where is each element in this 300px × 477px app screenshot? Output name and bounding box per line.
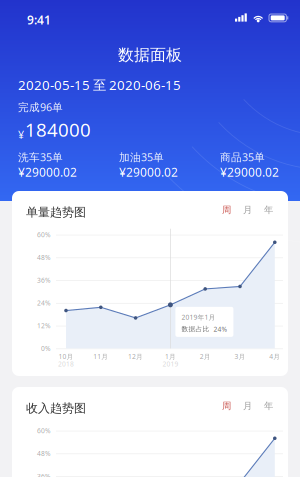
staticText: 2019年1月 xyxy=(181,313,215,322)
staticText: 36% xyxy=(37,472,51,477)
button[interactable]: 年 xyxy=(264,203,273,217)
staticText: 60% xyxy=(37,230,51,239)
staticText: 4月 xyxy=(269,352,280,361)
staticText: ¥29000.02 xyxy=(119,164,178,180)
staticText: 2018 xyxy=(58,359,74,368)
staticText: 3月 xyxy=(234,352,245,361)
staticText: 2020-05-15 至 2020-06-15 xyxy=(18,76,181,94)
staticText: 11月 xyxy=(93,352,108,361)
staticText: 1月 xyxy=(165,352,176,361)
staticText: 184000 xyxy=(25,117,91,142)
staticText: 24% xyxy=(213,325,227,334)
staticText: 9:41 xyxy=(27,12,51,28)
staticText: 加油35单 xyxy=(119,150,164,164)
staticText: 周 xyxy=(222,400,231,412)
staticText: 年 xyxy=(264,400,273,412)
staticText: 36% xyxy=(37,276,51,285)
button[interactable]: 年 xyxy=(264,399,273,413)
staticText: 10月 xyxy=(58,352,73,361)
staticText: ¥29000.02 xyxy=(220,164,279,180)
staticText: 2月 xyxy=(200,352,211,361)
staticText: 0% xyxy=(41,344,51,353)
staticText: 48% xyxy=(37,253,51,262)
staticText: 月 xyxy=(243,400,252,412)
staticText: 收入趋势图 xyxy=(26,401,86,416)
staticText: 数据面板 xyxy=(118,45,182,65)
staticText: ¥ xyxy=(18,128,24,142)
staticText: ¥29000.02 xyxy=(18,164,77,180)
staticText: 单量趋势图 xyxy=(26,205,86,220)
staticText: 月 xyxy=(243,204,252,216)
staticText: 12% xyxy=(37,321,51,330)
staticText: 24% xyxy=(37,298,51,307)
staticText: 洗车35单 xyxy=(18,150,63,164)
staticText: 60% xyxy=(37,426,51,435)
staticText: 年 xyxy=(264,204,273,216)
staticText: 数据占比 xyxy=(181,325,209,333)
staticText: 完成96单 xyxy=(18,100,63,114)
button[interactable]: 月 xyxy=(243,399,252,413)
staticText: 商品35单 xyxy=(220,150,265,164)
staticText: 12月 xyxy=(128,352,143,361)
button[interactable]: 周 xyxy=(222,203,231,217)
staticText: 周 xyxy=(222,204,231,216)
staticText: 48% xyxy=(37,449,51,458)
staticText: 2019 xyxy=(162,359,178,368)
button[interactable]: 周 xyxy=(222,399,231,413)
button[interactable]: 月 xyxy=(243,203,252,217)
